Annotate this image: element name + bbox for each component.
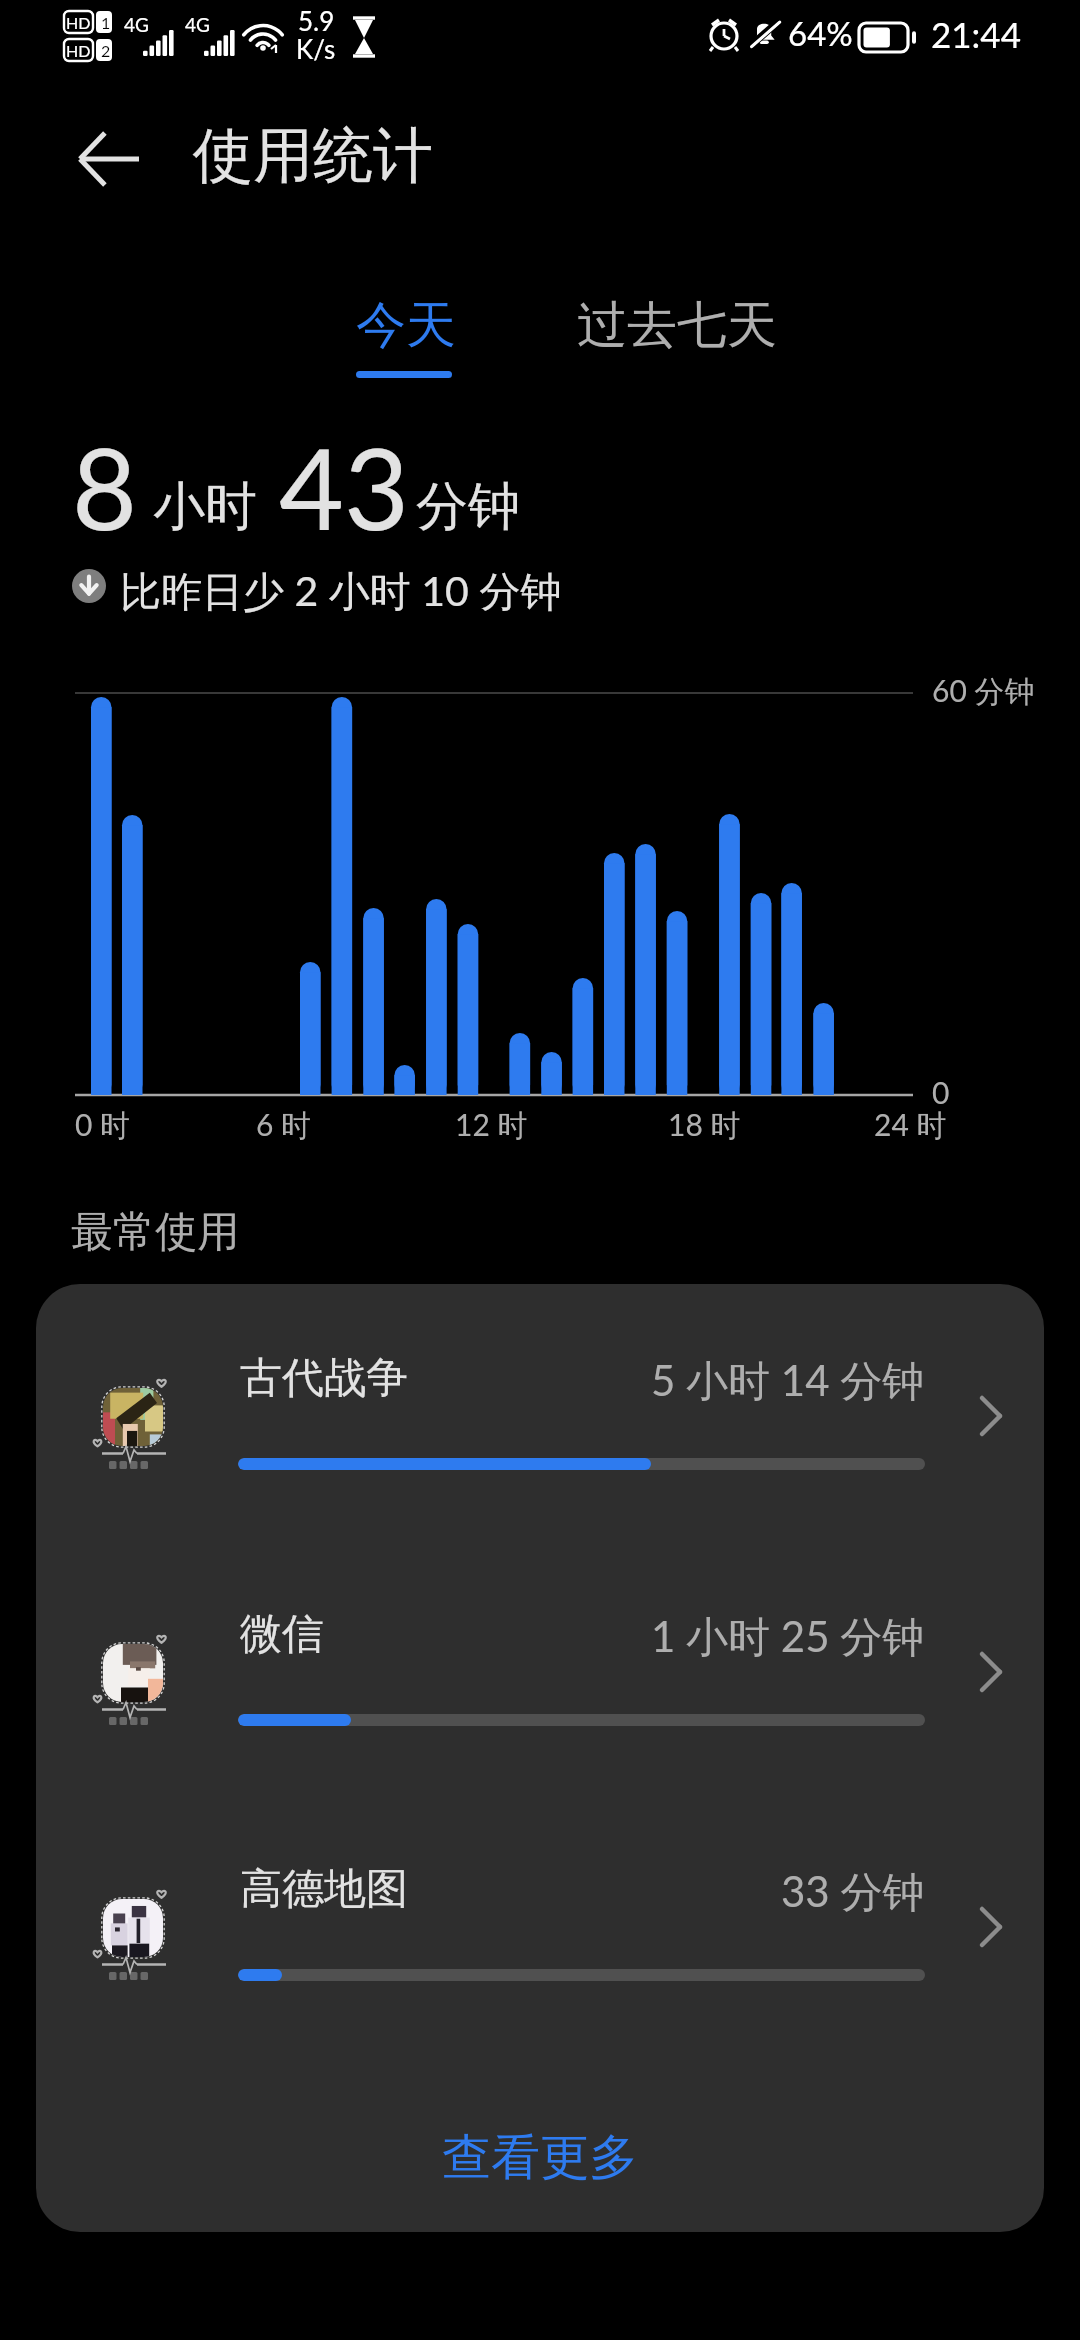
- staticText: HD: [66, 41, 91, 60]
- staticText: 6 时: [256, 1106, 312, 1145]
- staticText: 1 小时 25 分钟: [651, 1611, 925, 1665]
- staticText: 比昨日少 2 小时 10 分钟: [120, 566, 562, 619]
- staticText: 5.9: [298, 5, 335, 36]
- staticText: 1: [101, 13, 111, 32]
- button[interactable]: 古代战争: [36, 1284, 1044, 1540]
- staticText: 5 小时 14 分钟: [651, 1355, 925, 1409]
- staticText: 今天: [356, 294, 456, 357]
- staticText: 18 时: [668, 1106, 741, 1145]
- staticText: 查看更多: [442, 2127, 638, 2189]
- staticText: 4G: [185, 13, 210, 36]
- button[interactable]: 查看更多: [36, 2074, 1044, 2232]
- staticText: 过去七天: [577, 294, 777, 357]
- button[interactable]: 高德地图: [36, 1795, 1044, 2051]
- staticText: 高德地图: [240, 1863, 408, 1916]
- staticText: 微信: [240, 1608, 324, 1661]
- staticText: 小时: [153, 474, 257, 540]
- staticText: 33 分钟: [781, 1866, 925, 1920]
- staticText: 64%: [788, 13, 853, 53]
- button[interactable]: 微信: [36, 1540, 1044, 1796]
- staticText: K/s: [296, 33, 336, 64]
- staticText: 0: [932, 1074, 950, 1110]
- staticText: 古代战争: [240, 1352, 408, 1405]
- button[interactable]: Back: [62, 113, 154, 205]
- staticText: 12 时: [455, 1106, 528, 1145]
- staticText: 2: [101, 41, 111, 60]
- staticText: 最常使用: [71, 1206, 239, 1259]
- staticText: 使用统计: [193, 118, 433, 194]
- staticText: 43: [279, 419, 409, 553]
- staticText: 分钟: [416, 474, 520, 540]
- staticText: 24 时: [874, 1106, 947, 1145]
- button[interactable]: 今天: [340, 286, 468, 396]
- staticText: 0 时: [75, 1106, 131, 1145]
- staticText: 21:44: [931, 13, 1021, 55]
- staticText: HD: [66, 13, 91, 32]
- staticText: 4G: [124, 13, 149, 36]
- staticText: 60 分钟: [932, 672, 1035, 711]
- button[interactable]: 过去七天: [561, 286, 785, 366]
- staticText: 8: [72, 419, 137, 553]
